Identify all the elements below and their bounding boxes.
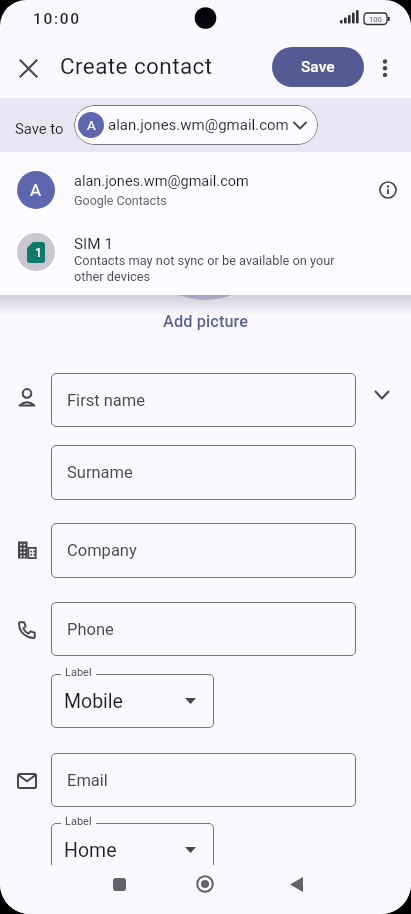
staticText: Create contact <box>60 53 213 79</box>
button[interactable]: Email <box>51 753 356 807</box>
button[interactable]: First name <box>51 373 356 427</box>
staticText: Contacts may not sync or be available on… <box>74 253 335 268</box>
button[interactable] <box>272 860 320 908</box>
button[interactable] <box>0 222 411 295</box>
button[interactable]: A <box>74 105 318 145</box>
button[interactable] <box>0 162 411 222</box>
staticText: Home <box>64 839 117 862</box>
staticText: Add picture <box>163 312 249 331</box>
button[interactable] <box>8 48 48 88</box>
button[interactable]: Mobile <box>51 674 214 728</box>
staticText: First name <box>67 391 146 410</box>
staticText: A <box>87 117 96 133</box>
staticText: other devices <box>74 269 151 284</box>
button[interactable] <box>181 860 229 908</box>
staticText: 1 <box>35 246 42 260</box>
staticText: SIM 1 <box>74 235 113 253</box>
staticText: Email <box>67 771 108 790</box>
button[interactable]: Home <box>51 823 214 877</box>
staticText: Google Contacts <box>74 193 167 208</box>
staticText: 100 <box>369 15 382 24</box>
staticText: Label <box>65 666 92 679</box>
staticText: Phone <box>67 620 114 639</box>
button[interactable]: Phone <box>51 602 356 656</box>
button[interactable] <box>365 48 405 88</box>
button[interactable]: Company <box>51 523 356 578</box>
button[interactable] <box>95 860 143 908</box>
staticText: Save to <box>15 120 64 137</box>
staticText: A <box>30 180 42 200</box>
staticText: alan.jones.wm@gmail.com <box>74 173 249 190</box>
staticText: Mobile <box>64 690 123 713</box>
staticText: Save <box>301 58 335 76</box>
staticText: Label <box>65 815 92 828</box>
button[interactable]: Surname <box>51 445 356 500</box>
button[interactable] <box>362 375 402 415</box>
staticText: Company <box>67 541 137 560</box>
staticText: 10:00 <box>33 10 81 28</box>
staticText: alan.jones.wm@gmail.com <box>108 116 289 134</box>
staticText: Surname <box>67 463 133 482</box>
button[interactable]: Save <box>272 47 364 87</box>
